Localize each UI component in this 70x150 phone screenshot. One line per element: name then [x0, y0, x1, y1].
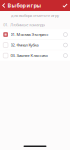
button[interactable]: Back — [0, 0, 7, 11]
staticText: для выбора отметьте игру — [11, 13, 59, 18]
staticText: 01. — [3, 22, 8, 27]
button[interactable]: 02. Финал Кубка — [0, 40, 70, 50]
staticText: 01. Москва Экспресс — [11, 32, 49, 37]
button[interactable]: Done — [60, 0, 70, 11]
staticText: Выбор игры — [7, 2, 41, 9]
staticText: 03. Зимнее Классико — [11, 53, 48, 58]
button[interactable]: 01. Москва Экспресс — [0, 29, 70, 40]
button[interactable]: 03. Зимнее Классико — [0, 50, 70, 61]
staticText: Любимые команды — [10, 22, 45, 27]
staticText: 02. Финал Кубка — [11, 42, 39, 48]
